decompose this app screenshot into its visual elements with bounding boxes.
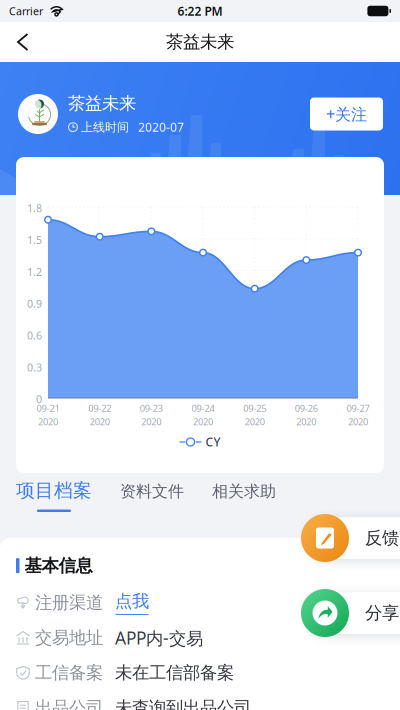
staticText: 2020 — [38, 415, 58, 428]
staticText: 1.2 — [27, 265, 42, 279]
staticText: 09-23 — [140, 402, 163, 414]
staticText: 反馈 — [365, 527, 399, 549]
button[interactable]: Back — [0, 24, 43, 60]
button[interactable]: 项目档案 — [16, 479, 92, 531]
staticText: 茶益未来 — [166, 31, 234, 53]
staticText: 分享 — [365, 602, 399, 624]
staticText: 0.6 — [27, 328, 42, 342]
staticText: 项目档案 — [16, 479, 92, 502]
staticText: 上线时间 — [81, 120, 129, 134]
staticText: 未查询到出品公司 — [115, 697, 251, 710]
staticText: 0.3 — [27, 360, 42, 374]
staticText: 基本信息 — [24, 555, 92, 576]
staticText: 2020 — [245, 415, 265, 428]
staticText: 2020 — [141, 415, 161, 428]
staticText: 2020 — [296, 415, 316, 428]
staticText: 工信备案 — [35, 662, 103, 683]
staticText: 出品公司 — [35, 697, 103, 710]
staticText: CY — [205, 434, 220, 450]
staticText: 交易地址 — [35, 627, 103, 648]
staticText: Carrier — [9, 4, 43, 18]
staticText: 2020 — [90, 415, 110, 428]
staticText: 6:22 PM — [177, 3, 222, 19]
staticText: 09-27 — [346, 402, 369, 414]
staticText: 茶益未来 — [68, 93, 136, 114]
button[interactable]: 反馈 — [301, 514, 400, 562]
staticText: 2020 — [193, 415, 213, 428]
staticText: 相关求助 — [212, 482, 276, 501]
button[interactable]: 资料文件 — [120, 479, 184, 502]
staticText: 09-24 — [191, 402, 214, 414]
button[interactable]: 点我 — [115, 591, 149, 615]
button[interactable]: 相关求助 — [212, 479, 276, 502]
staticText: APP内-交易 — [115, 626, 203, 649]
staticText: 注册渠道 — [35, 592, 103, 613]
staticText: 0 — [36, 392, 42, 406]
staticText: 2020 — [348, 415, 368, 428]
staticText: 0.9 — [27, 296, 42, 311]
staticText: +关注 — [326, 103, 367, 125]
staticText: 1.5 — [27, 233, 42, 247]
staticText: 09-22 — [88, 402, 111, 414]
staticText: 点我 — [115, 591, 149, 612]
staticText: 09-25 — [243, 402, 266, 414]
staticText: 09-26 — [295, 402, 318, 414]
staticText: 09-21 — [36, 402, 59, 414]
staticText: 2020-07 — [138, 119, 184, 135]
button[interactable]: 分享 — [301, 589, 400, 637]
staticText: 未在工信部备案 — [115, 662, 234, 683]
staticText: 资料文件 — [120, 482, 184, 501]
staticText: 1.8 — [27, 201, 42, 215]
button[interactable]: +关注 — [310, 97, 383, 130]
